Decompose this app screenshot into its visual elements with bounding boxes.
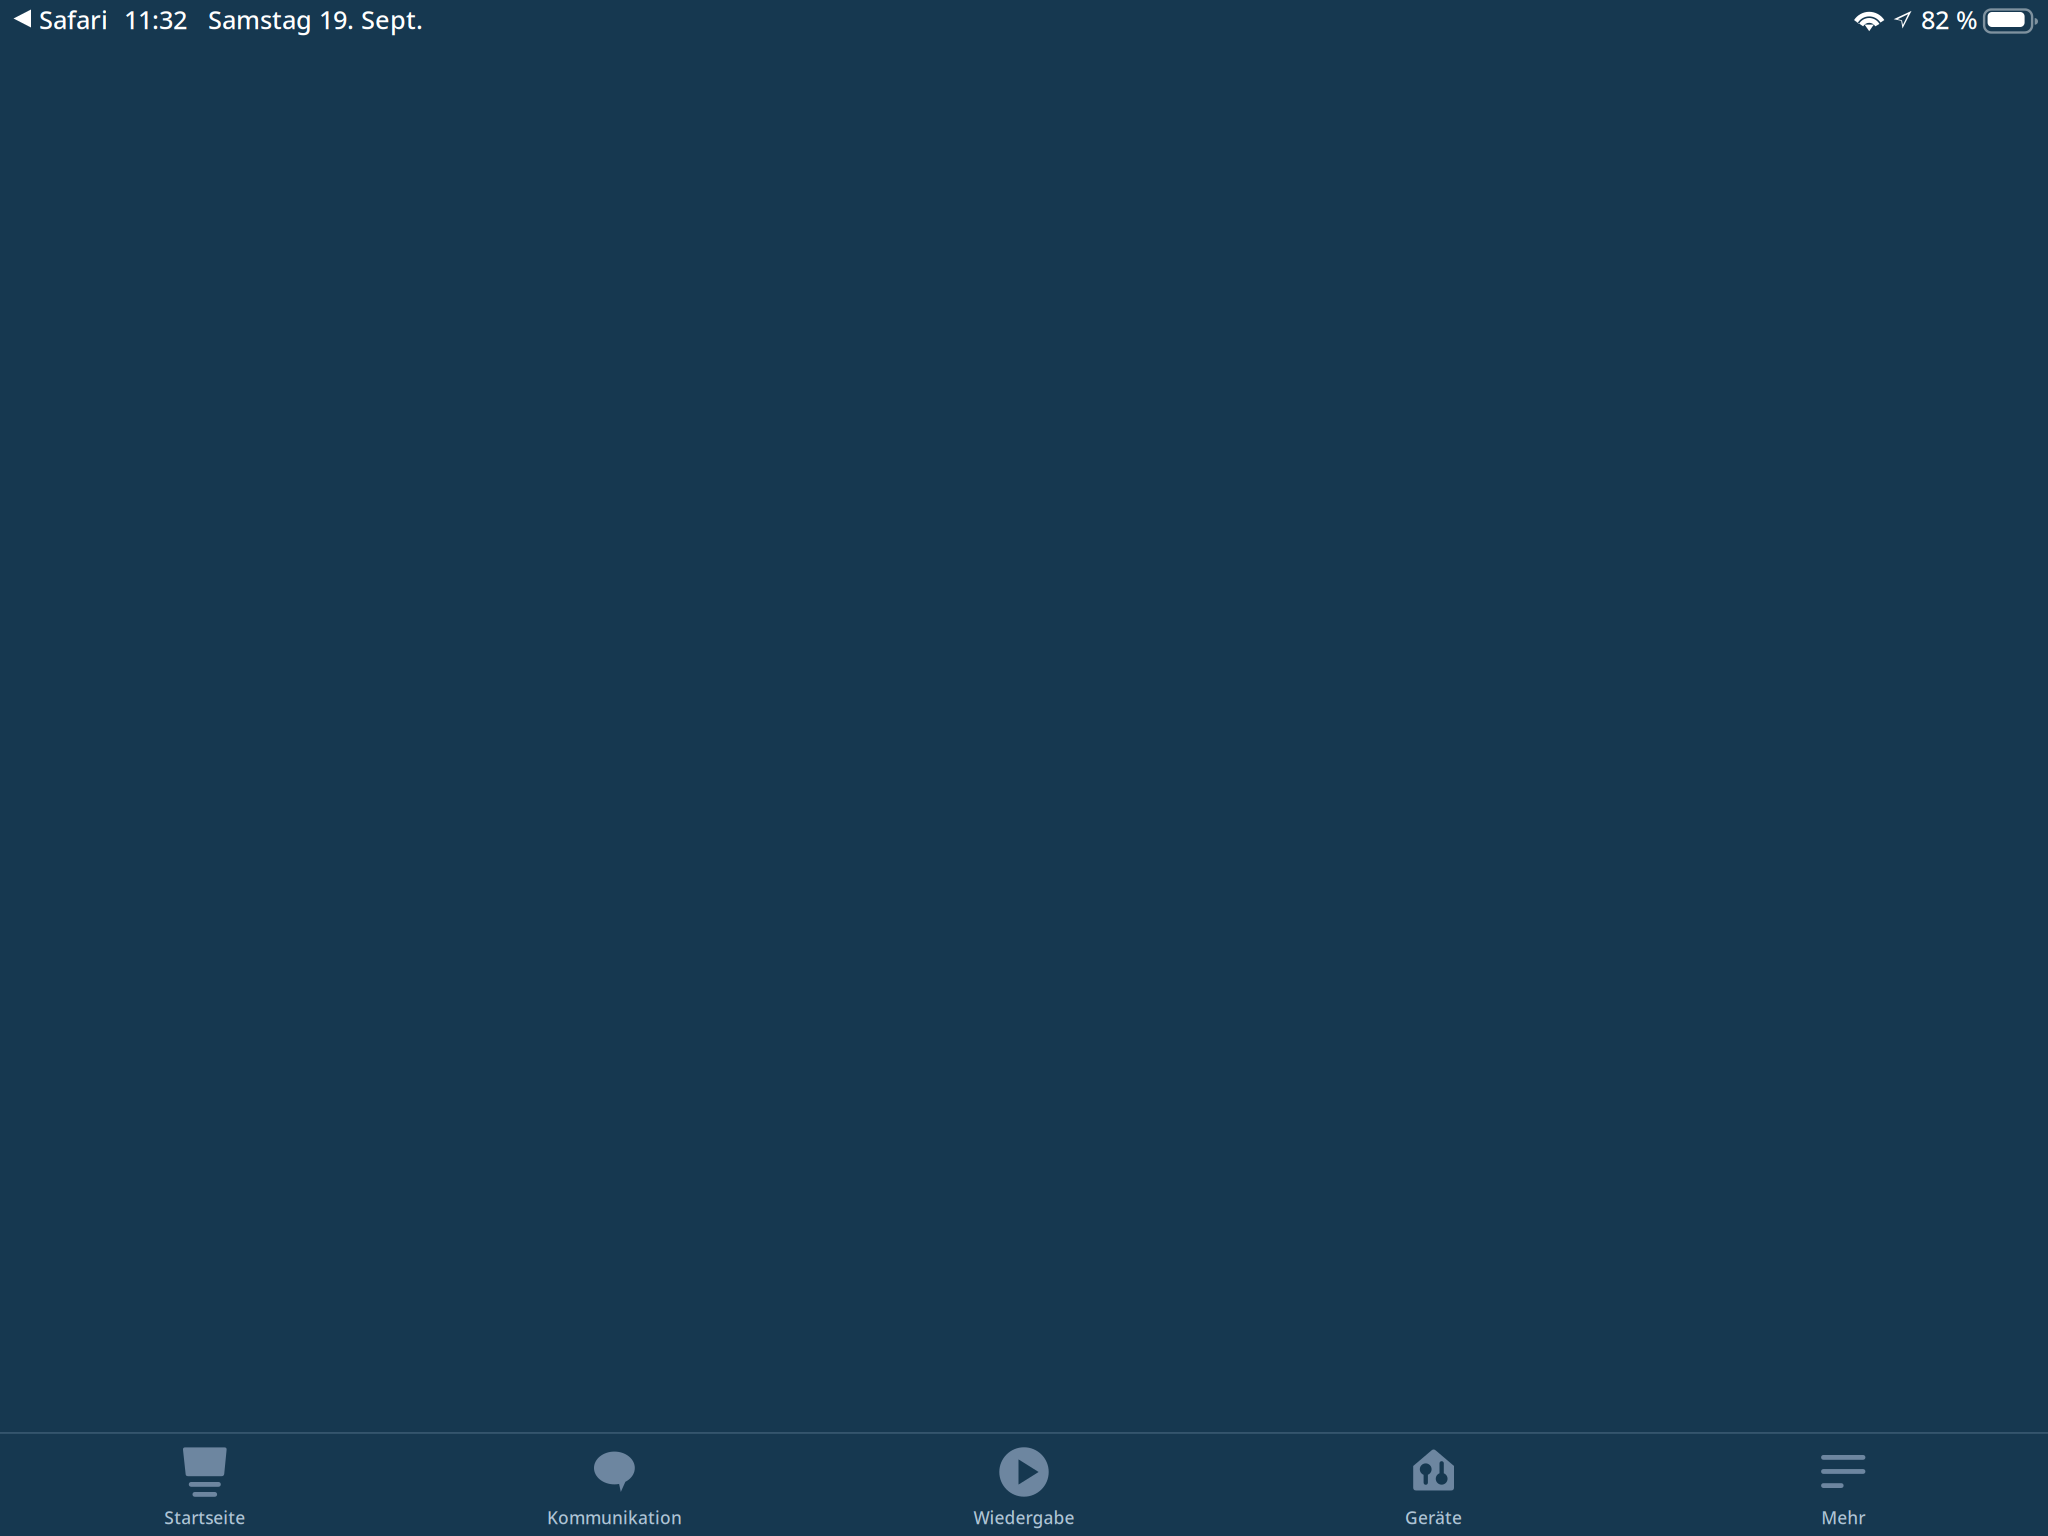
staticText: Startseite — [164, 1506, 245, 1529]
button[interactable]: Geräte — [1229, 1434, 1638, 1536]
button[interactable]: Back to Safari — [13, 3, 108, 36]
staticText: 11:32 — [124, 3, 187, 36]
button[interactable]: Wiedergabe — [819, 1434, 1229, 1536]
staticText: Wiedergabe — [973, 1506, 1074, 1529]
staticText: 82 % — [1921, 3, 1978, 36]
staticText: Safari — [39, 3, 108, 36]
staticText: Mehr — [1821, 1506, 1865, 1529]
button[interactable]: Startseite — [0, 1434, 410, 1536]
button[interactable]: Kommunikation — [410, 1434, 819, 1536]
button[interactable]: Mehr — [1638, 1434, 2048, 1536]
staticText: Kommunikation — [547, 1506, 682, 1529]
staticText: Geräte — [1405, 1506, 1462, 1529]
staticText: Samstag 19. Sept. — [208, 3, 423, 36]
